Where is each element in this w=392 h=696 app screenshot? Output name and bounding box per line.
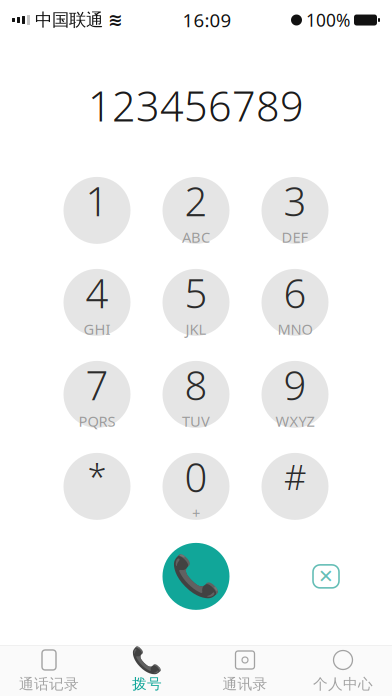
button[interactable]: 2 <box>162 177 229 244</box>
staticText: 8 <box>184 358 207 411</box>
staticText: GHI <box>83 319 110 339</box>
button[interactable]: 9 <box>261 361 328 428</box>
staticText: 个人中心 <box>313 675 373 693</box>
button[interactable]: 8 <box>162 361 229 428</box>
staticText: 2 <box>184 174 207 227</box>
staticText: + <box>192 503 200 523</box>
button[interactable]: 6 <box>261 269 328 336</box>
button[interactable]: 7 <box>63 361 130 428</box>
staticText: 📞 <box>171 553 221 599</box>
staticText: WXYZ <box>275 411 314 431</box>
button[interactable]: 📞 <box>98 643 196 696</box>
button[interactable]: 5 <box>162 269 229 336</box>
staticText: * <box>87 454 106 500</box>
staticText: TUV <box>182 411 210 431</box>
button[interactable]: 通讯录 <box>196 643 294 696</box>
staticText: 通话记录 <box>19 675 79 693</box>
staticText: 拨号 <box>132 675 162 693</box>
button[interactable]: 个人中心 <box>294 643 392 696</box>
button[interactable]: 0 <box>162 453 229 520</box>
button[interactable]: 1 <box>63 177 130 244</box>
staticText: ≋ <box>108 10 123 30</box>
staticText: 6 <box>283 266 306 319</box>
staticText: 3 <box>283 174 306 227</box>
button[interactable]: 4 <box>63 269 130 336</box>
staticText: # <box>284 454 306 500</box>
staticText: 5 <box>184 266 207 319</box>
staticText: 📞 <box>131 645 163 674</box>
staticText: 0 <box>184 450 207 503</box>
staticText: MNO <box>277 319 312 339</box>
button[interactable]: Delete <box>295 545 357 607</box>
staticText: ABC <box>182 227 210 247</box>
staticText: 7 <box>85 358 108 411</box>
staticText: PQRS <box>78 411 115 431</box>
button[interactable]: 3 <box>261 177 328 244</box>
staticText: DEF <box>281 227 308 247</box>
staticText: JKL <box>185 319 206 339</box>
staticText: ✕ <box>318 566 334 587</box>
staticText: 4 <box>85 266 108 319</box>
staticText: 1 <box>85 174 108 227</box>
staticText: 通讯录 <box>222 675 267 693</box>
button[interactable]: # <box>261 453 328 520</box>
staticText: 16:09 <box>182 8 231 32</box>
button[interactable]: Call <box>162 543 229 610</box>
staticText: 123456789 <box>88 78 304 133</box>
button[interactable]: * <box>63 453 130 520</box>
staticText: 9 <box>283 358 306 411</box>
staticText: 100% <box>306 8 350 31</box>
staticText: 中国联通 <box>35 9 103 31</box>
button[interactable]: 通话记录 <box>0 643 98 696</box>
